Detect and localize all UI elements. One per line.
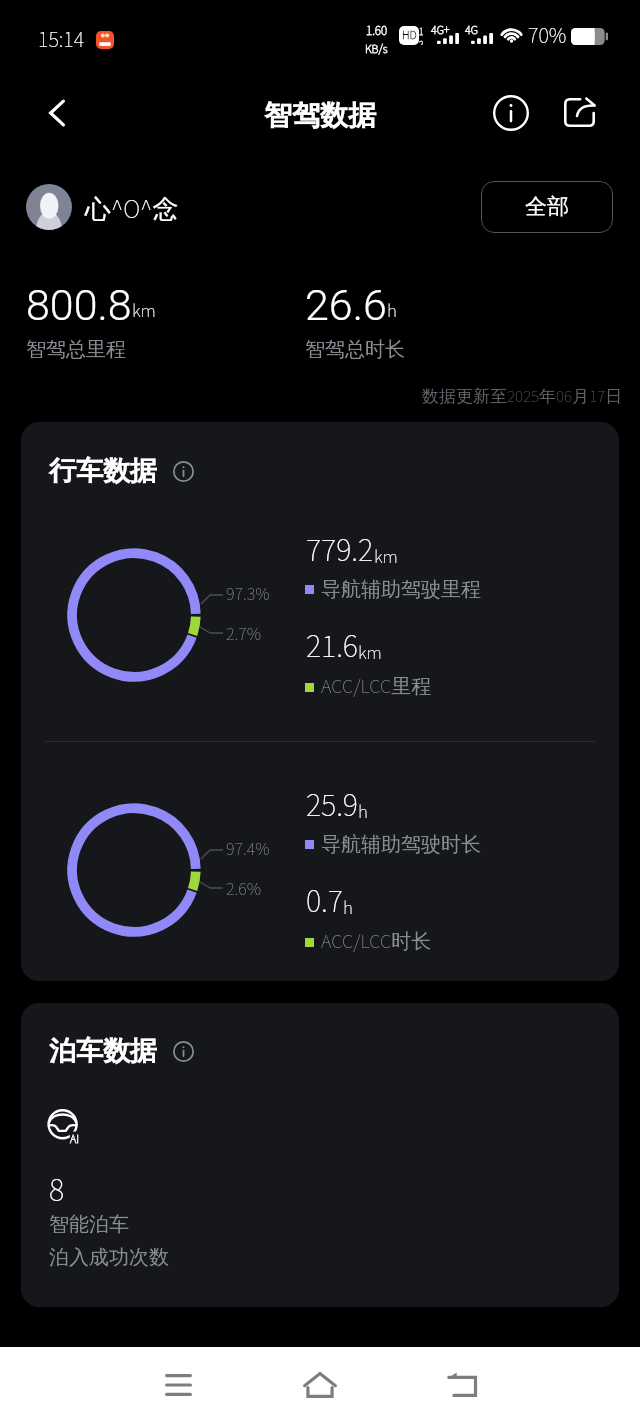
staticText: 25.9 [306,783,358,829]
staticText: 70% [528,20,567,51]
staticText: 智驾总里程 [26,337,126,362]
button[interactable]: 行车数据 info [168,456,198,486]
button[interactable]: 泊车数据 info [168,1036,198,1066]
button[interactable]: 800.8 [26,280,156,330]
staticText: ACC/LCC时长 [321,928,432,956]
staticText: 97.3% [226,582,270,608]
staticText: 779.2 [306,528,374,574]
staticText: HD [402,27,417,44]
staticText: 智能泊车 [49,1212,129,1237]
staticText: 智驾数据 [264,98,376,133]
staticText: ACC/LCC里程 [321,673,432,701]
staticText: 心^O^念 [85,191,179,228]
staticText: 2.7% [226,622,262,648]
staticText: 1 [419,26,424,39]
button[interactable]: 导航辅助驾驶里程 [306,577,481,602]
staticText: 1.60 [366,22,388,41]
staticText: km [374,544,398,571]
staticText: 泊入成功次数 [49,1245,169,1270]
button[interactable]: 全部 [481,181,613,233]
staticText: km [358,640,382,667]
button[interactable]: ACC/LCC时长 [306,928,432,956]
staticText: 2.6% [226,877,262,903]
staticText: 4G+ [431,22,450,39]
staticText: 导航辅助驾驶里程 [321,577,481,602]
staticText: 2 [419,39,424,45]
staticText: 8 [49,1168,65,1214]
button[interactable]: Info [486,88,536,138]
staticText: 26.6 [305,280,387,330]
button[interactable]: Back [433,1356,491,1414]
button[interactable]: Share [554,87,604,137]
button[interactable]: ACC/LCC里程 [306,673,432,701]
button[interactable]: Avatar [26,184,72,230]
button[interactable]: 导航辅助驾驶时长 [306,832,481,857]
staticText: AI [70,1131,80,1148]
staticText: 行车数据 [49,454,157,488]
button[interactable]: 26.6 [305,280,397,330]
staticText: 97.4% [226,837,270,863]
staticText: 15:14 [38,24,85,55]
staticText: h [343,895,353,922]
staticText: 数据更新至2025年06月17日 [422,385,623,409]
staticText: 800.8 [26,280,132,330]
staticText: 导航辅助驾驶时长 [321,832,481,857]
staticText: 智驾总时长 [305,337,405,362]
staticText: 0.7 [306,879,343,925]
staticText: 全部 [525,193,569,221]
staticText: 21.6 [306,624,358,670]
button[interactable]: Back [32,88,82,138]
staticText: h [358,799,368,826]
staticText: 泊车数据 [49,1034,157,1068]
staticText: 4G [465,22,478,39]
staticText: KB/s [365,41,388,58]
staticText: h [387,298,397,325]
staticText: km [132,298,156,325]
button[interactable]: Recent apps [149,1356,207,1414]
button[interactable]: Home [291,1356,349,1414]
